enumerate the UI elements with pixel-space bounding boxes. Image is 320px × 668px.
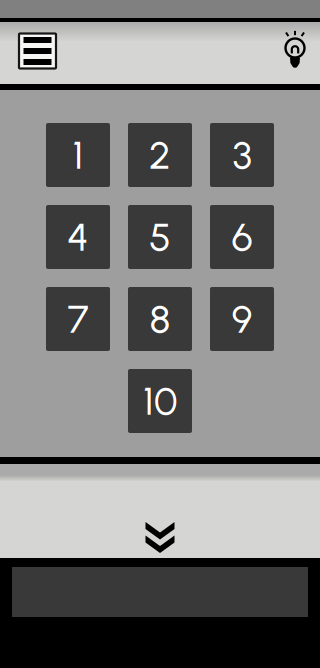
staticText: 10 [143,377,177,425]
staticText: 7 [67,295,88,343]
staticText: 4 [67,213,89,261]
button[interactable]: Menu [19,35,56,70]
button[interactable]: 2 [128,123,192,187]
button[interactable]: 9 [210,287,274,351]
button[interactable]: 7 [46,287,110,351]
staticText: 1 [72,131,83,179]
staticText: 6 [231,213,252,261]
staticText: 2 [149,131,171,179]
staticText: 9 [231,295,252,343]
button[interactable]: Show more [0,464,320,558]
button[interactable]: 3 [210,123,274,187]
button[interactable]: Light [277,32,311,74]
staticText: 8 [149,295,170,343]
button[interactable]: 1 [46,123,110,187]
staticText: 5 [149,213,171,261]
button[interactable]: 4 [46,205,110,269]
button[interactable]: 8 [128,287,192,351]
staticText: 3 [232,131,251,179]
button[interactable]: 5 [128,205,192,269]
button[interactable]: 10 [128,369,192,433]
button[interactable]: 6 [210,205,274,269]
